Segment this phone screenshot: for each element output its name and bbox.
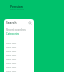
button[interactable]: Categories [4,32,34,35]
staticText: Item text [6,61,17,64]
button[interactable]: Item text [4,57,34,60]
button[interactable]: Search [4,19,34,27]
button[interactable]: Item text [4,49,34,52]
button[interactable]: Item text [4,45,34,48]
staticText: Pension [10,4,24,8]
staticText: Item text [6,41,17,44]
staticText: Item text [6,57,17,60]
button[interactable]: Item text [4,53,34,56]
staticText: Recent searches [6,28,26,31]
staticText: Categories [6,32,20,35]
staticText: Item text [6,69,17,72]
button[interactable]: Item text [4,41,34,44]
button[interactable]: Item text [4,65,34,68]
button[interactable]: Item text [4,69,34,72]
button[interactable]: Search [28,21,32,25]
button[interactable]: Item text [4,61,34,64]
staticText: Item text [6,53,17,56]
staticText: English Learning [10,8,24,10]
button[interactable]: Recent searches [4,28,34,31]
staticText: Search [6,21,17,25]
staticText: Item text [6,49,17,52]
staticText: Item text [6,65,17,68]
staticText: Item text [6,45,17,48]
